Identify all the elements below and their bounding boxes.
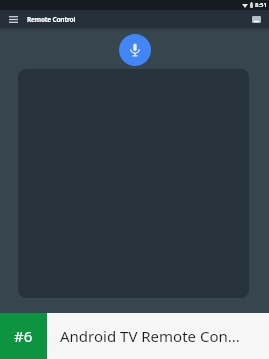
staticText: Android TV Remote Con... bbox=[60, 326, 240, 346]
button[interactable] bbox=[9, 16, 18, 23]
staticText: #6 bbox=[14, 326, 33, 346]
button[interactable]: Android TV Remote Con... bbox=[47, 313, 269, 359]
button[interactable] bbox=[252, 16, 261, 23]
button[interactable] bbox=[119, 34, 151, 66]
staticText: Remote Control bbox=[27, 15, 76, 24]
button[interactable]: #6 bbox=[0, 313, 47, 359]
staticText: 8:51 bbox=[255, 1, 267, 9]
